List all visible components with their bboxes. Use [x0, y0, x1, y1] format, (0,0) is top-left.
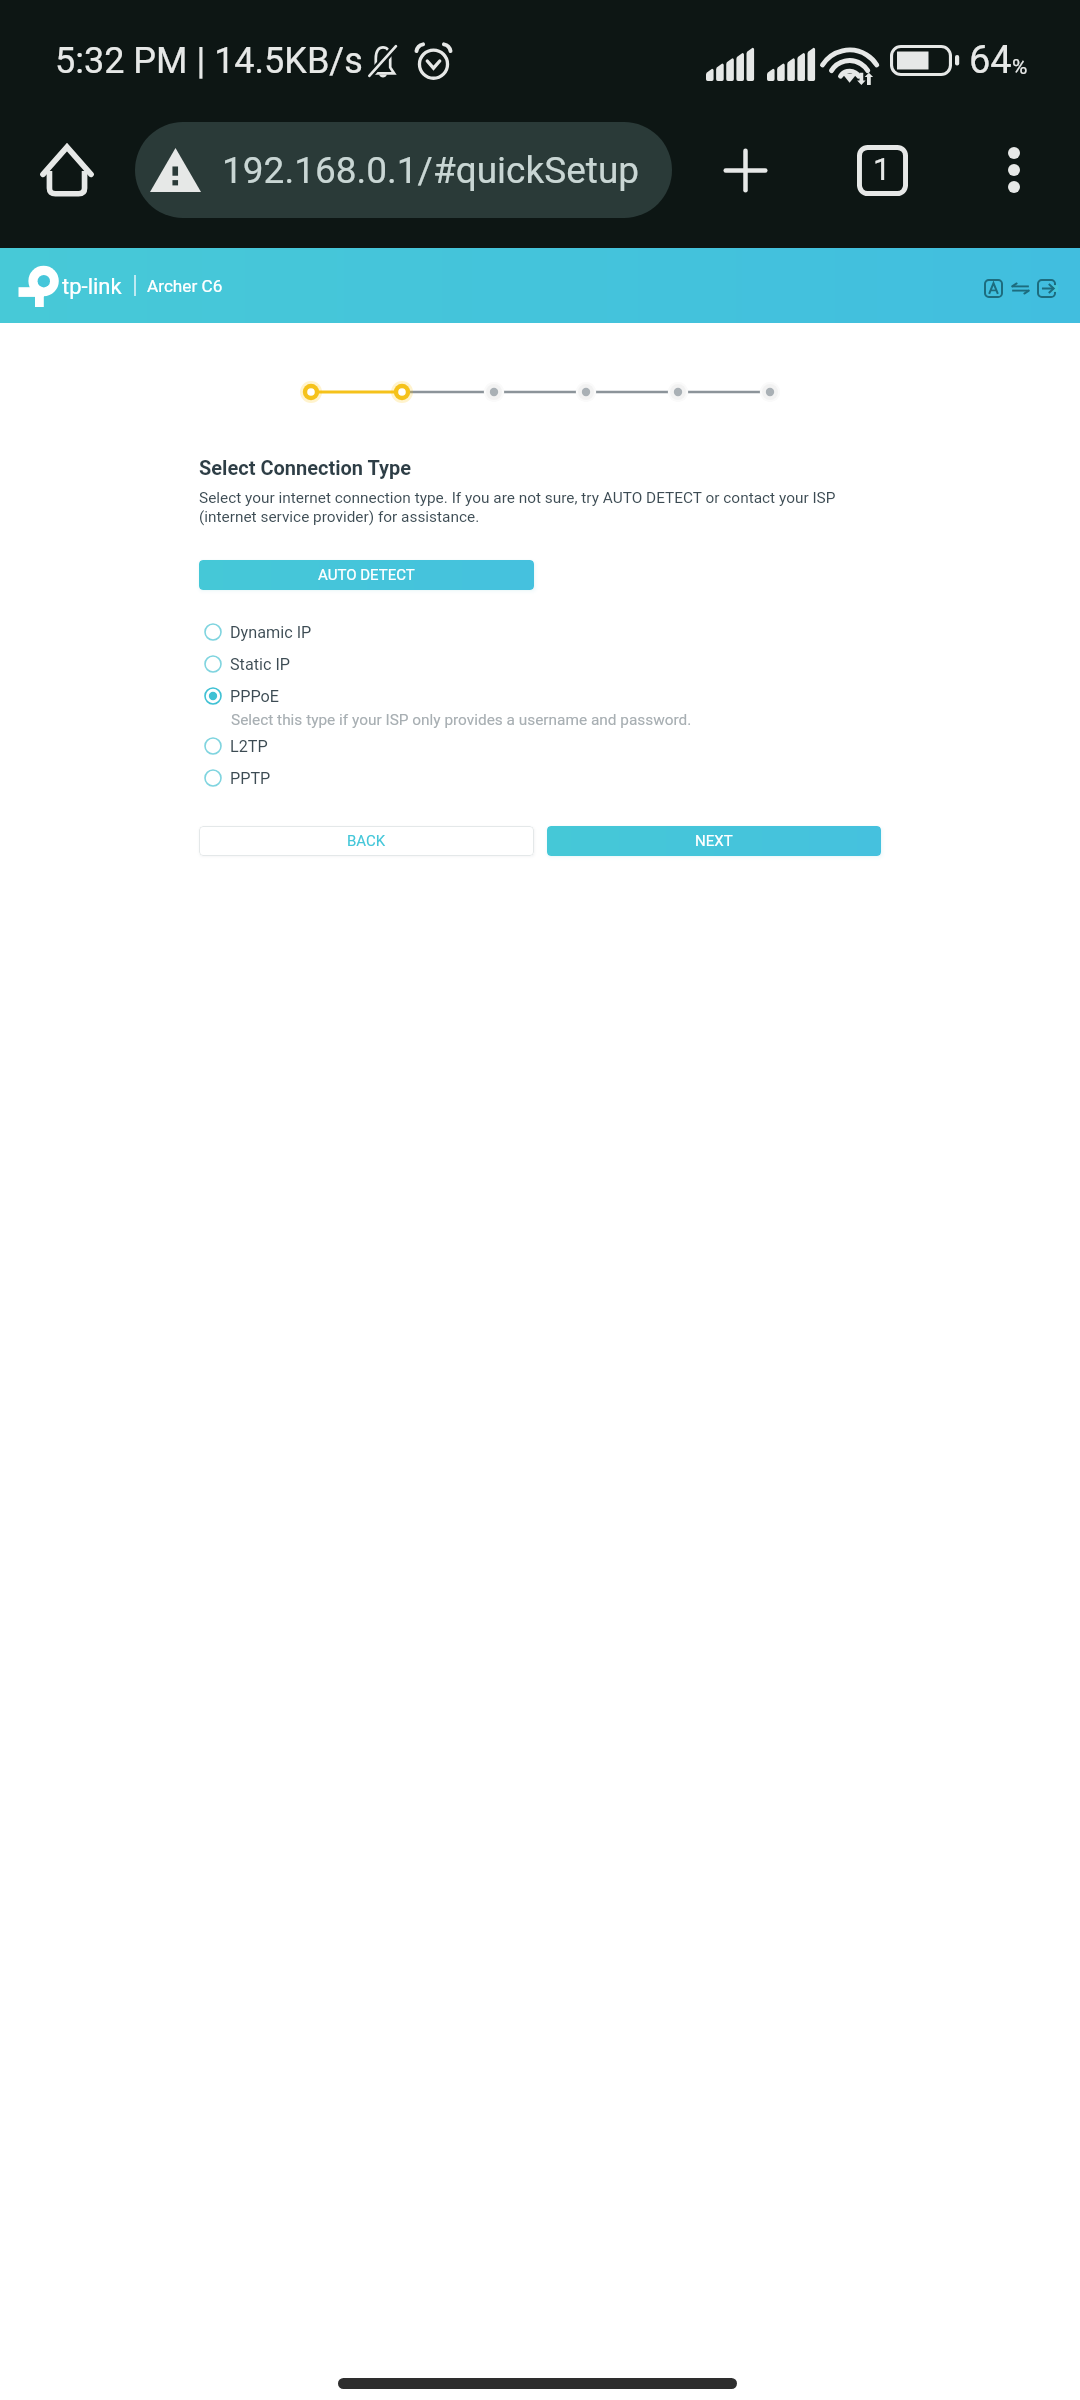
- staticText: Select Connection Type: [199, 456, 412, 479]
- staticText: 1: [873, 151, 891, 187]
- button[interactable]: BACK: [199, 826, 534, 856]
- staticText: AUTO DETECT: [318, 566, 415, 584]
- button[interactable]: Home: [24, 127, 110, 213]
- button[interactable]: PPPoE: [0, 680, 1080, 712]
- staticText: Dynamic IP: [230, 623, 312, 642]
- staticText: NEXT: [695, 832, 733, 850]
- staticText: PPTP: [230, 769, 271, 788]
- staticText: %: [1012, 55, 1028, 80]
- staticText: PPPoE: [230, 687, 279, 706]
- button[interactable]: 192.168.0.1/#quickSetup: [135, 122, 672, 218]
- staticText: Archer C6: [147, 276, 223, 296]
- button[interactable]: Static IP: [0, 648, 1080, 680]
- staticText: 64: [969, 38, 1012, 83]
- staticText: Static IP: [230, 655, 291, 674]
- staticText: BACK: [347, 832, 386, 850]
- button[interactable]: L2TP: [0, 730, 1080, 762]
- staticText: L2TP: [230, 737, 268, 756]
- button[interactable]: Dynamic IP: [0, 616, 1080, 648]
- staticText: Select your internet connection type. If…: [199, 489, 850, 526]
- button[interactable]: Tabs, 1 open: [837, 125, 927, 215]
- button[interactable]: New tab: [700, 125, 790, 215]
- staticText: tp-link: [62, 274, 122, 300]
- button[interactable]: More options: [969, 125, 1059, 215]
- button[interactable]: PPTP: [0, 762, 1080, 794]
- staticText: 192.168.0.1/#quickSetup: [222, 149, 640, 192]
- button[interactable]: Switch mode: [1002, 269, 1039, 307]
- button[interactable]: NEXT: [547, 826, 881, 856]
- button[interactable]: AUTO DETECT: [199, 560, 534, 590]
- staticText: Select this type if your ISP only provid…: [231, 711, 692, 729]
- button[interactable]: Log out: [1028, 269, 1065, 307]
- staticText: 5:32 PM | 14.5KB/s: [55, 40, 363, 82]
- button[interactable]: Language: [975, 269, 1012, 307]
